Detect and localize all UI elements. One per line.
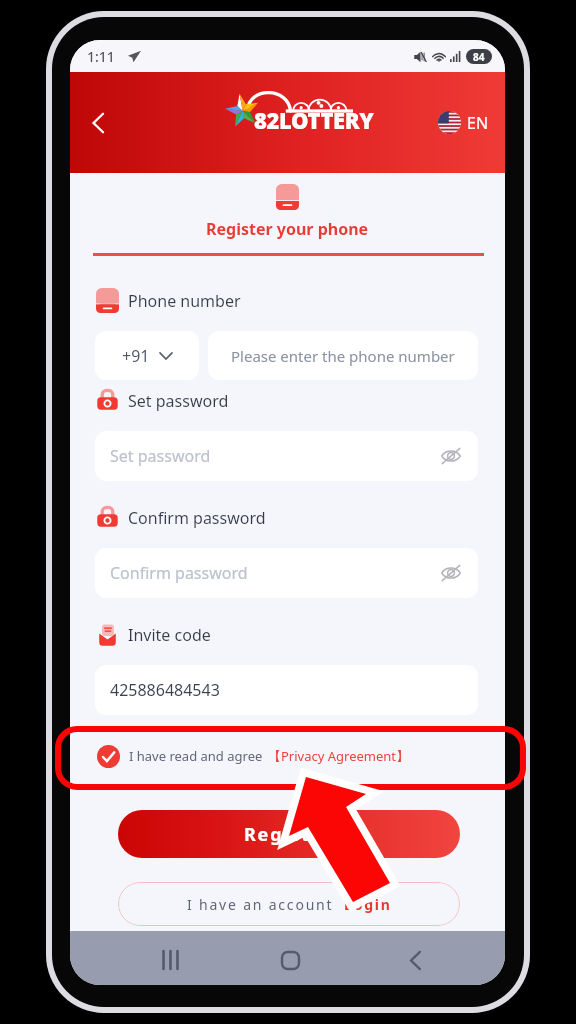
staticText: 【Privacy Agreement】 [268,747,410,765]
staticText: Please enter the phone number [231,346,455,366]
other: Show password [441,446,461,466]
button[interactable]: Back [391,936,439,984]
staticText: Confirm password [128,507,266,529]
button[interactable]: Home [266,936,314,984]
staticText: Login [344,895,392,914]
staticText: EN [467,112,489,134]
staticText: Register [244,822,334,847]
staticText: I have an account [187,895,334,914]
other: Show password [441,563,461,583]
staticText: 84 [473,50,485,64]
staticText: Set password [128,390,229,412]
staticText: Phone number [128,290,241,312]
button[interactable]: Confirm password [95,548,478,598]
staticText: Register your phone [206,218,369,240]
staticText: 82LOTTERY [254,105,374,135]
staticText: Invite code [128,624,211,646]
button[interactable]: Back [76,101,120,145]
button[interactable]: I have read and agree [95,739,412,773]
staticText: I have read and agree [129,747,263,765]
button[interactable]: EN [434,107,493,138]
button[interactable]: I have an account [118,882,460,926]
staticText: 1:11 [87,47,115,66]
staticText: Set password [110,445,211,467]
button[interactable]: Please enter the phone number [208,331,478,380]
staticText: Confirm password [110,562,248,584]
staticText: +91 [122,345,150,367]
button[interactable]: Register [118,810,460,858]
staticText: 425886484543 [110,679,220,701]
button[interactable]: Recents [146,936,194,984]
button[interactable]: 425886484543 [95,665,478,715]
button[interactable]: +91 [95,331,199,380]
button[interactable]: Set password [95,431,478,481]
